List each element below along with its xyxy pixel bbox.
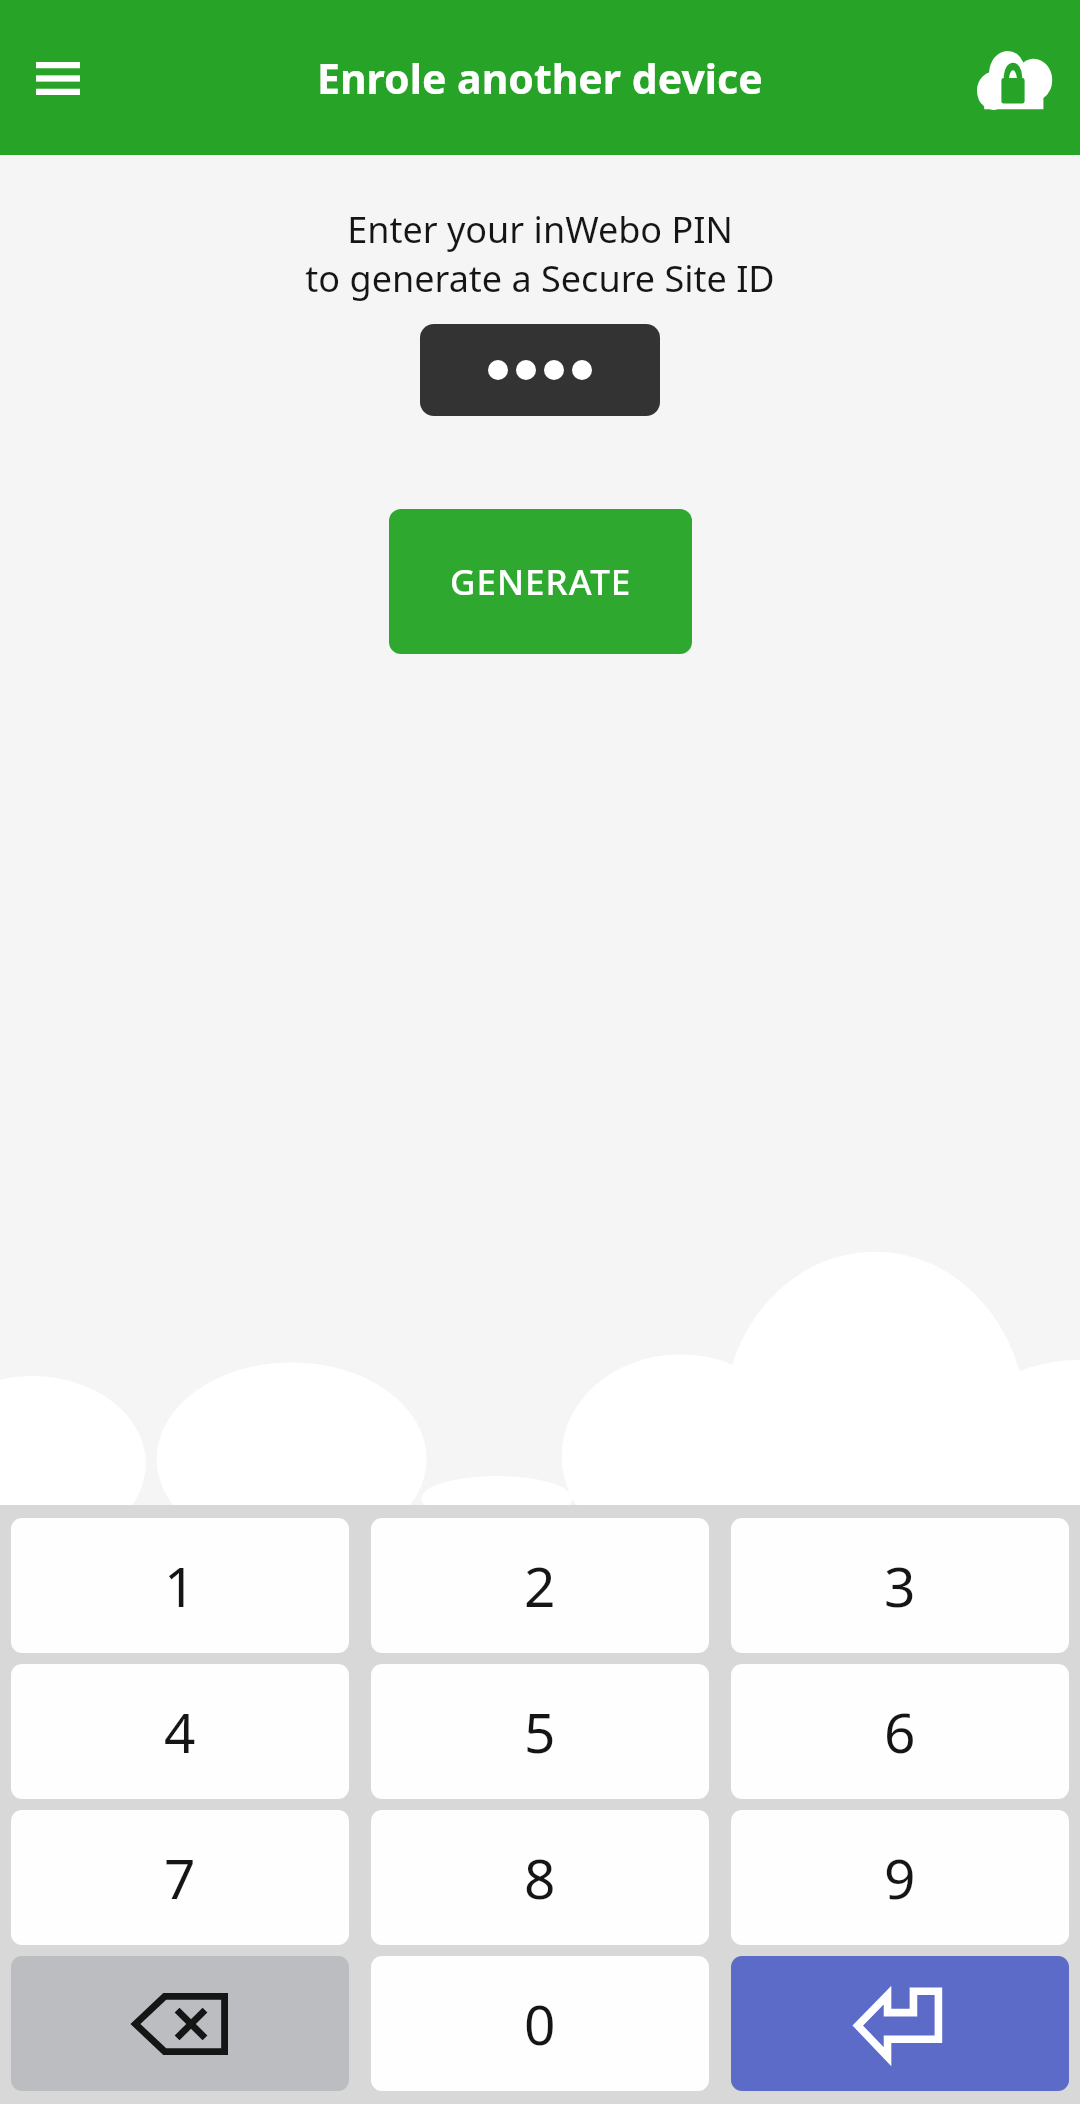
button[interactable]: 6 xyxy=(731,1664,1069,1799)
button[interactable]: 7 xyxy=(11,1810,349,1945)
button[interactable]: 4 xyxy=(11,1664,349,1799)
button[interactable]: 3 xyxy=(731,1518,1069,1653)
staticText: GENERATE xyxy=(450,558,632,606)
button[interactable]: 5 xyxy=(371,1664,709,1799)
button[interactable]: 2 xyxy=(371,1518,709,1653)
staticText: 9 xyxy=(884,1840,916,1915)
staticText: 2 xyxy=(524,1548,556,1623)
button[interactable]: Secure cloud xyxy=(968,33,1058,123)
staticText: Enter your inWebo PIN to generate a Secu… xyxy=(305,205,775,302)
staticText: 0 xyxy=(524,1986,556,2061)
staticText: 3 xyxy=(884,1548,916,1623)
staticText: 5 xyxy=(524,1694,556,1769)
staticText: 6 xyxy=(884,1694,916,1769)
staticText: 1 xyxy=(164,1548,196,1623)
staticText: 8 xyxy=(524,1840,556,1915)
button[interactable]: Open navigation menu xyxy=(18,38,98,118)
button[interactable]: 9 xyxy=(731,1810,1069,1945)
button[interactable]: 0 xyxy=(371,1956,709,2091)
button[interactable]: Backspace xyxy=(11,1956,349,2091)
button[interactable]: PIN entry field xyxy=(420,324,660,416)
staticText: 4 xyxy=(164,1694,196,1769)
button[interactable]: 1 xyxy=(11,1518,349,1653)
button[interactable]: 8 xyxy=(371,1810,709,1945)
staticText: 7 xyxy=(164,1840,196,1915)
button[interactable]: Enter xyxy=(731,1956,1069,2091)
staticText: Enrole another device xyxy=(317,50,763,106)
button[interactable]: GENERATE xyxy=(389,509,692,654)
